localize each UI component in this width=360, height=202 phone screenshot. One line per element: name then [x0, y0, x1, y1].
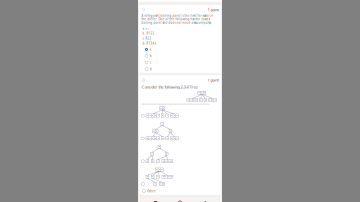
- button[interactable]: Back: [197, 197, 211, 202]
- button[interactable]: [141, 122, 219, 140]
- staticText: c: [150, 61, 151, 64]
- staticText: 1): [141, 7, 144, 12]
- button[interactable]: [141, 145, 219, 163]
- button[interactable]: c: [145, 61, 151, 64]
- staticText: d: [150, 67, 152, 71]
- button[interactable]: Recent apps: [148, 197, 162, 202]
- button[interactable]: a: [145, 48, 151, 51]
- staticText: A refrigerant boiling point is the limit…: [141, 14, 213, 25]
- staticText: c. R22: [142, 37, 151, 40]
- staticText: b: [150, 54, 152, 58]
- staticText: d. R134a: [142, 42, 155, 45]
- staticText: a. R11: [142, 27, 151, 30]
- button[interactable]: b: [145, 54, 152, 58]
- button[interactable]: Other:: [142, 189, 156, 193]
- button[interactable]: Home: [173, 197, 187, 202]
- button[interactable]: [141, 168, 219, 185]
- staticText: Consider the following 2-3-4 Tree:: [141, 84, 198, 90]
- staticText: 1 point: [208, 7, 219, 12]
- staticText: 2): [141, 77, 144, 83]
- staticText: a: [150, 48, 151, 51]
- button[interactable]: [141, 107, 219, 117]
- button[interactable]: d: [145, 68, 152, 71]
- staticText: b. R123: [142, 32, 154, 35]
- staticText: 1 point: [208, 77, 219, 83]
- staticText: Other:: [147, 189, 156, 193]
